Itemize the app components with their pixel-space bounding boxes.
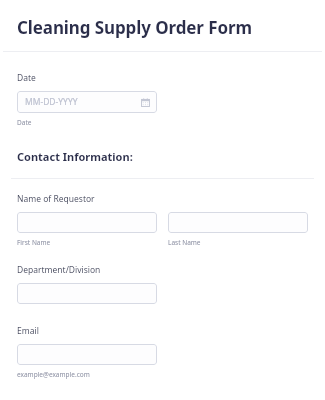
staticText: Department/Division (17, 264, 101, 276)
staticText: Date (17, 72, 36, 84)
staticText: Name of Requestor (17, 193, 95, 205)
button[interactable] (17, 212, 157, 233)
button[interactable] (17, 283, 157, 304)
staticText: Date (17, 118, 32, 127)
button[interactable] (168, 212, 308, 233)
button[interactable]: MM-DD-YYYY (17, 91, 157, 113)
staticText: MM-DD-YYYY (25, 96, 78, 108)
staticText: Email (17, 325, 39, 337)
staticText: Last Name (168, 238, 201, 247)
staticText: example@example.com (17, 370, 90, 379)
staticText: Contact Information: (17, 149, 133, 164)
button[interactable]: Pick date (141, 98, 150, 107)
staticText: First Name (17, 238, 51, 247)
staticText: Cleaning Supply Order Form (17, 16, 252, 39)
button[interactable] (17, 344, 157, 365)
